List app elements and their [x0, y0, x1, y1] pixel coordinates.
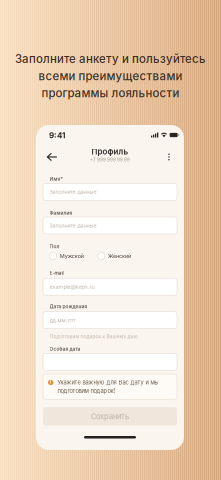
staticText: example@kepn.ru: [49, 283, 94, 290]
staticText: Укажите важную для Вас дату и мы: [57, 379, 158, 386]
staticText: Подготовим подарок к Вашему дню: [49, 334, 137, 339]
staticText: E-mail: [49, 270, 63, 276]
button[interactable]: Женский: [98, 252, 131, 260]
staticText: +7 999 999 99 99: [90, 157, 130, 162]
button[interactable]: Назад: [42, 147, 62, 167]
staticText: Особая дата: [49, 346, 80, 352]
staticText: Фамилия: [49, 210, 72, 216]
staticText: Сохранить: [91, 412, 129, 421]
staticText: !: [50, 380, 52, 385]
staticText: Женский: [108, 253, 131, 259]
staticText: Дата рождения: [49, 304, 87, 309]
staticText: Заполните анкету и пользуйтесь: [15, 52, 206, 66]
staticText: Мужской: [60, 253, 84, 259]
staticText: Имя*: [49, 176, 62, 182]
button[interactable]: Сохранить: [43, 407, 177, 426]
button[interactable]: Мужской: [49, 252, 84, 260]
staticText: всеми преимуществами: [38, 69, 182, 83]
staticText: Пол: [49, 243, 59, 249]
button[interactable]: Меню: [160, 148, 178, 166]
staticText: Заполните данные: [49, 222, 96, 229]
staticText: Заполните данные: [49, 189, 96, 195]
staticText: программы лояльности: [41, 86, 179, 100]
staticText: Профиль: [91, 147, 128, 156]
staticText: 9:41: [49, 130, 65, 140]
staticText: подготовим подарок!: [57, 387, 115, 394]
staticText: дд.мм.гггг: [49, 317, 75, 323]
